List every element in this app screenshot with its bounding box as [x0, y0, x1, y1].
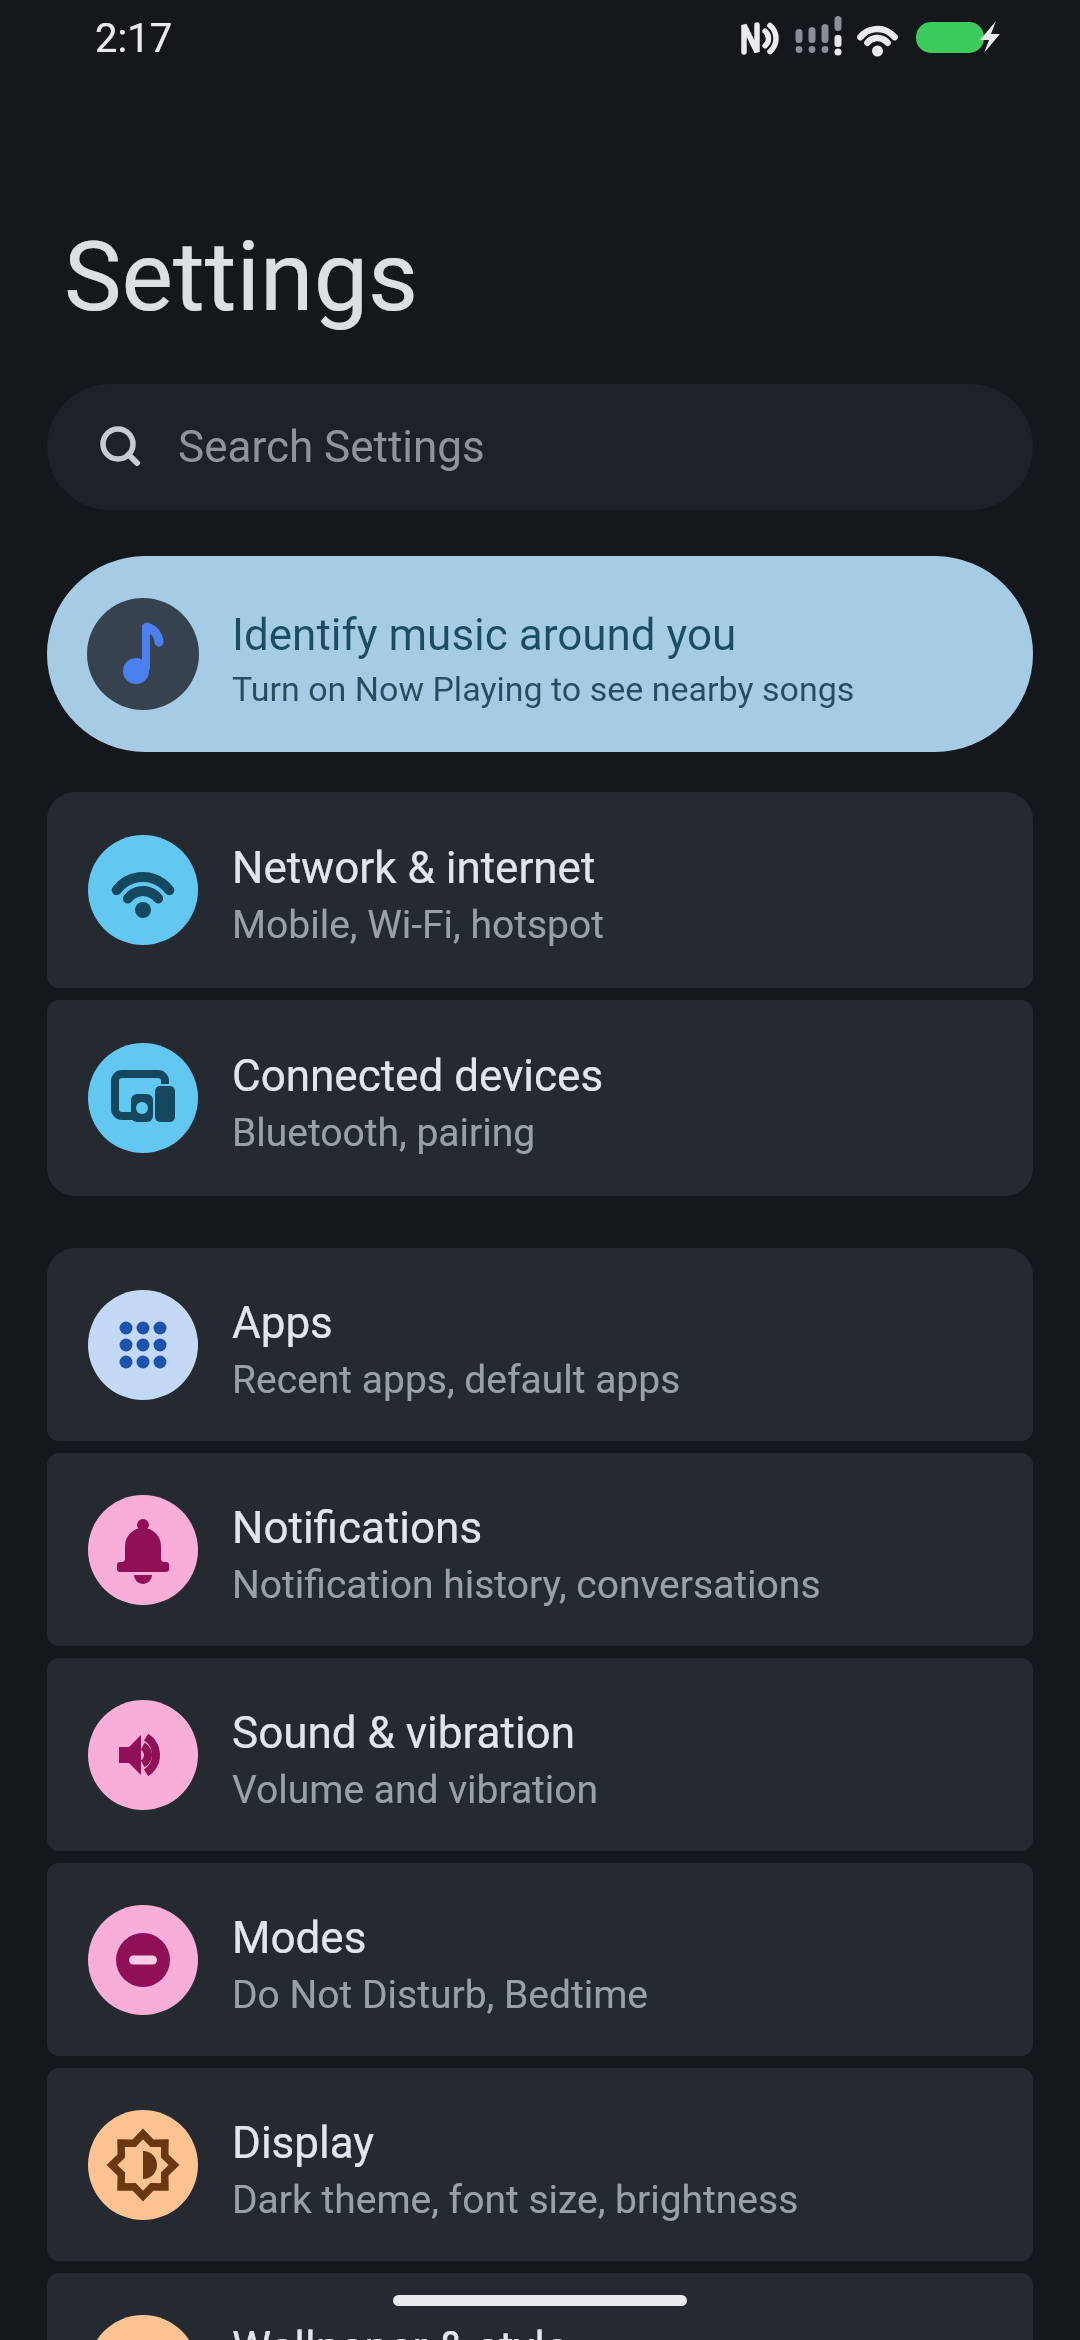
- button[interactable]: Display: [47, 2068, 1033, 2261]
- button[interactable]: Sound & vibration: [47, 1658, 1033, 1851]
- button[interactable]: Search Settings: [47, 384, 1033, 510]
- staticText: 2:17: [95, 15, 173, 62]
- staticText: Recent apps, default apps: [232, 1357, 681, 1403]
- staticText: Bluetooth, pairing: [232, 1110, 536, 1156]
- button[interactable]: Notifications: [47, 1453, 1033, 1646]
- staticText: Do Not Disturb, Bedtime: [232, 1972, 649, 2018]
- staticText: Notifications: [232, 1502, 483, 1554]
- staticText: Search Settings: [178, 421, 485, 473]
- staticText: Dark theme, font size, brightness: [232, 2177, 799, 2223]
- staticText: Volume and vibration: [232, 1767, 599, 1813]
- staticText: Modes: [232, 1912, 367, 1964]
- staticText: Display: [232, 2117, 375, 2169]
- staticText: Network & internet: [232, 842, 596, 894]
- staticText: Identify music around you: [232, 609, 737, 661]
- staticText: Wallpaper & style: [232, 2322, 569, 2340]
- button[interactable]: Connected devices: [47, 1000, 1033, 1196]
- staticText: Sound & vibration: [232, 1707, 575, 1759]
- staticText: Connected devices: [232, 1050, 604, 1102]
- button[interactable]: Apps: [47, 1248, 1033, 1441]
- staticText: Notification history, conversations: [232, 1562, 821, 1608]
- button[interactable]: Identify music around you: [47, 556, 1033, 752]
- staticText: Mobile, Wi-Fi, hotspot: [232, 902, 604, 948]
- staticText: Apps: [232, 1297, 333, 1349]
- button[interactable]: Modes: [47, 1863, 1033, 2056]
- button[interactable]: Network & internet: [47, 792, 1033, 988]
- staticText: Turn on Now Playing to see nearby songs: [232, 669, 855, 709]
- button[interactable]: Wallpaper & style: [47, 2273, 1033, 2340]
- staticText: Settings: [64, 220, 419, 334]
